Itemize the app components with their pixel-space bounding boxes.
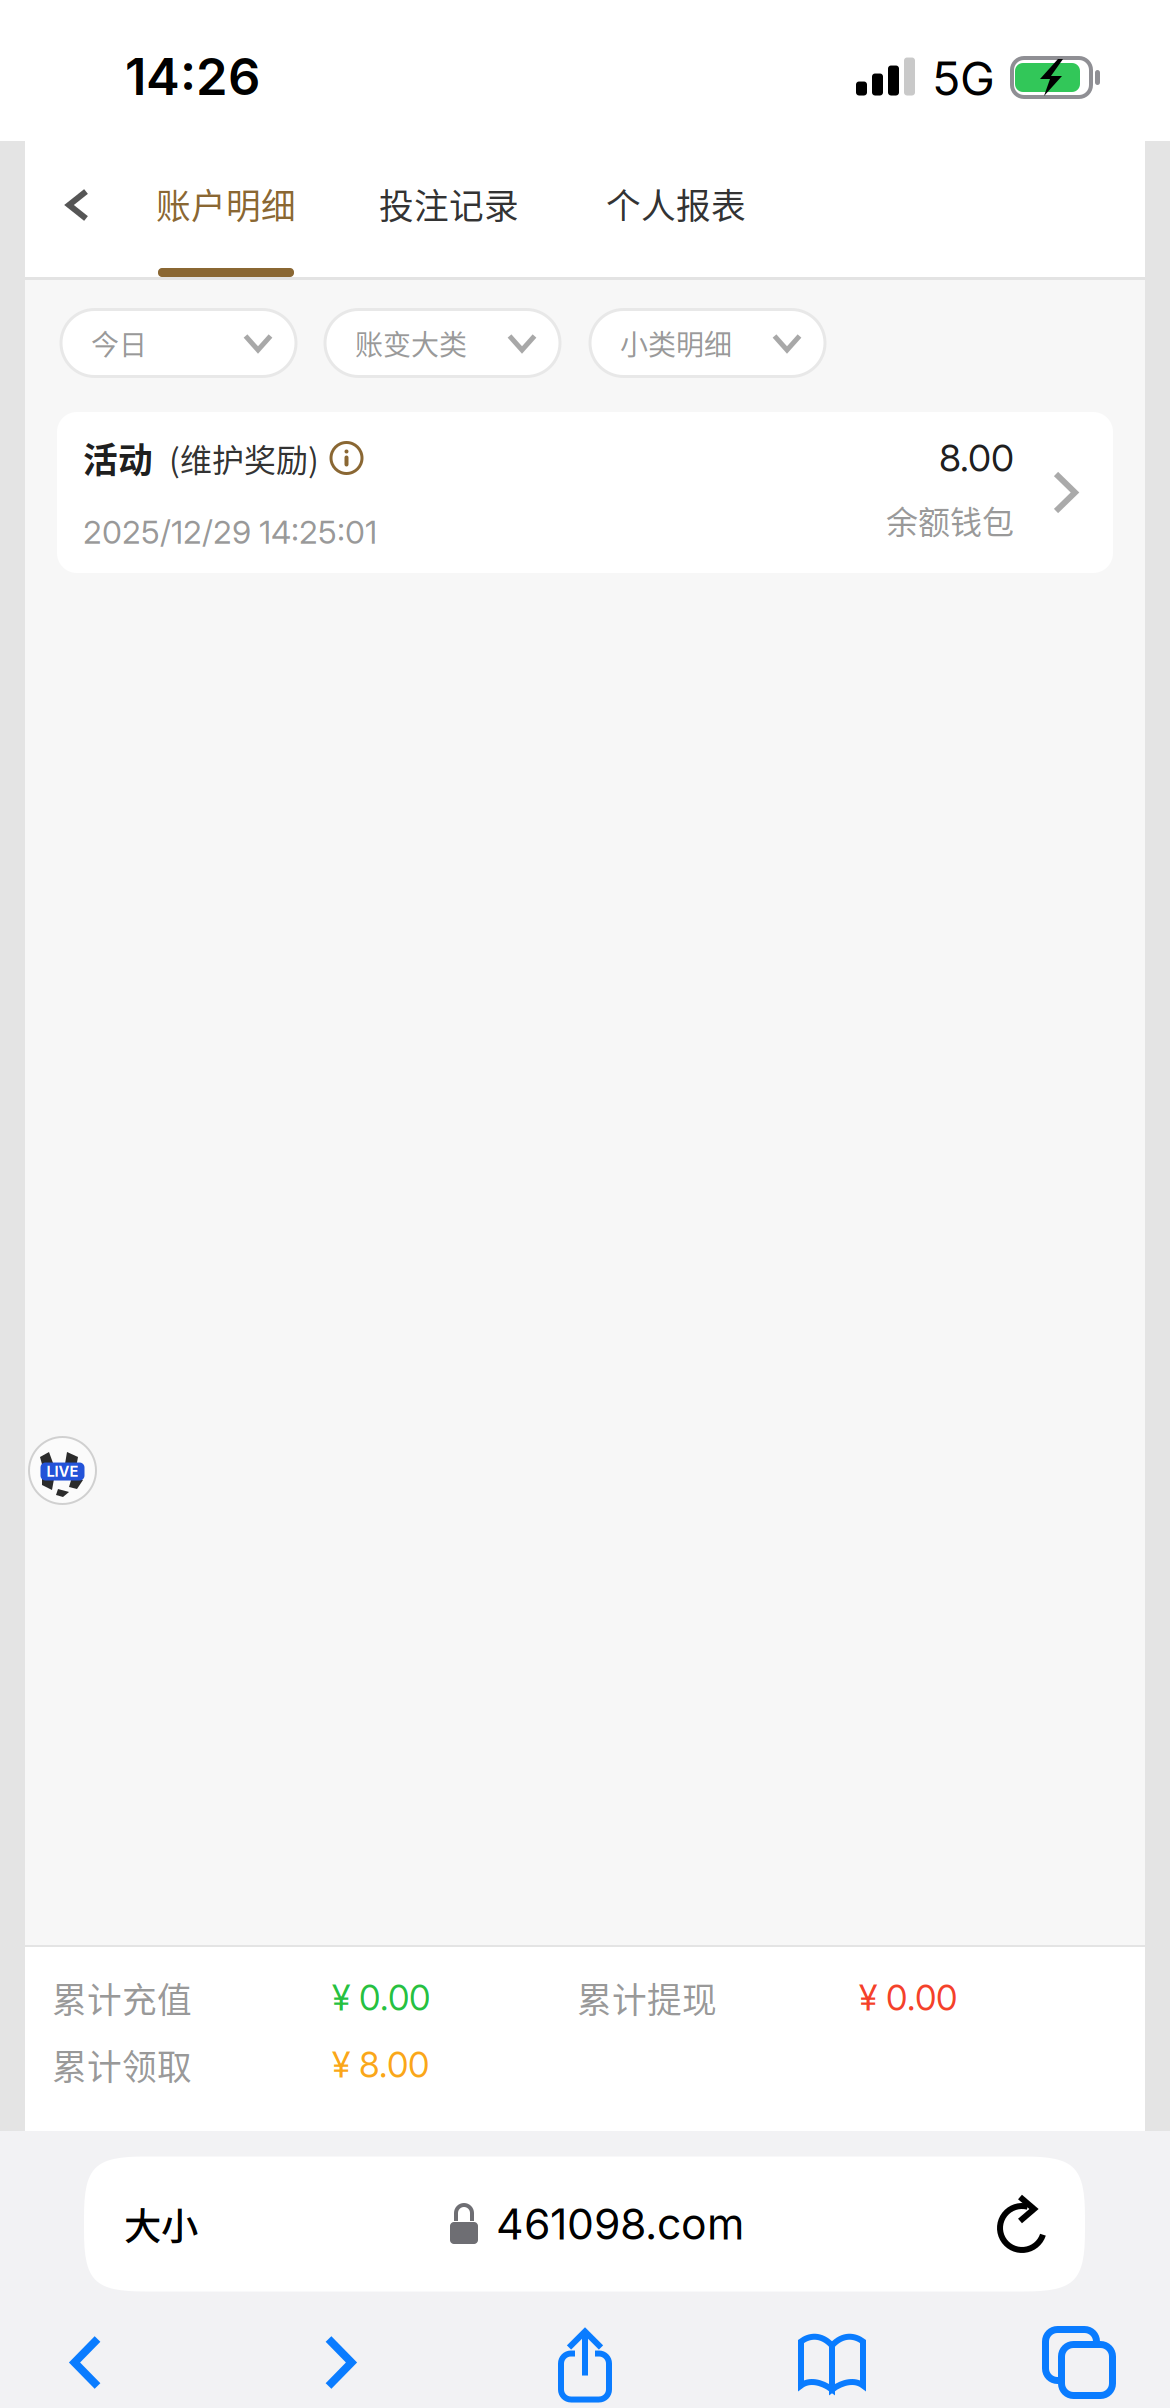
button[interactable]: 投注记录: [379, 141, 519, 277]
staticText: 大小: [124, 2197, 198, 2251]
button[interactable]: 今日: [61, 309, 296, 376]
button[interactable]: Forward: [172, 2308, 508, 2408]
staticText: 个人报表: [606, 179, 746, 229]
staticText: 账变大类: [355, 323, 467, 363]
button[interactable]: Live: [29, 1437, 96, 1504]
staticText: 2025/12/29 14:25:01: [83, 513, 377, 551]
button[interactable]: 账变大类: [325, 309, 560, 376]
button[interactable]: Back: [0, 2308, 172, 2408]
staticText: 小类明细: [620, 323, 732, 363]
staticText: 账户明细: [156, 179, 296, 229]
button[interactable]: 大小: [84, 2156, 1085, 2291]
button[interactable]: 账户明细: [156, 141, 296, 277]
staticText: ¥ 8.00: [332, 2044, 429, 2086]
button[interactable]: Back: [25, 141, 156, 277]
staticText: 461098.com: [496, 2198, 744, 2250]
staticText: 投注记录: [379, 179, 519, 229]
staticText: 活动: [83, 433, 153, 483]
staticText: ¥ 0.00: [332, 1977, 430, 2019]
button[interactable]: 小类明细: [590, 309, 825, 376]
staticText: 5G: [932, 50, 995, 107]
staticText: 8.00: [939, 435, 1014, 481]
staticText: 14:26: [125, 46, 260, 107]
staticText: 累计领取: [52, 2040, 192, 2090]
staticText: LIVE: [46, 1463, 78, 1480]
staticText: 今日: [91, 323, 147, 363]
button[interactable]: Tabs: [1002, 2308, 1156, 2408]
staticText: ¥ 0.00: [859, 1977, 957, 2019]
button[interactable]: Share: [508, 2308, 662, 2408]
staticText: 累计充值: [52, 1973, 192, 2023]
staticText: (维护奖励): [169, 435, 319, 481]
button[interactable]: 个人报表: [606, 141, 746, 277]
staticText: 余额钱包: [886, 497, 1014, 543]
button[interactable]: 活动: [57, 412, 1113, 573]
staticText: 累计提现: [577, 1973, 717, 2023]
button[interactable]: Bookmarks: [662, 2308, 1002, 2408]
